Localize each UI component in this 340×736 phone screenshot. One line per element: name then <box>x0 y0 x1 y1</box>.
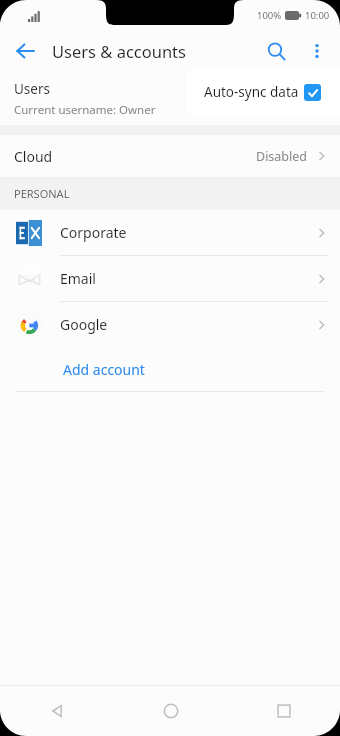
button[interactable]: Home <box>114 685 227 736</box>
button[interactable]: Cloud <box>0 135 340 177</box>
staticText: Current username: Owner <box>14 102 156 118</box>
staticText: Corporate <box>60 223 127 242</box>
button[interactable]: Back <box>0 685 114 736</box>
staticText: Disabled <box>256 148 308 165</box>
button[interactable]: Google <box>0 302 340 347</box>
button[interactable]: Corporate <box>0 210 340 255</box>
staticText: Email <box>60 269 96 288</box>
staticText: Auto-sync data <box>204 83 299 101</box>
button[interactable]: Add account <box>0 347 340 391</box>
button[interactable]: Recent apps <box>227 685 340 736</box>
button[interactable]: Auto-sync data <box>186 70 340 114</box>
staticText: PERSONAL <box>14 186 70 201</box>
button[interactable]: Search <box>258 33 294 69</box>
staticText: Cloud <box>14 147 53 166</box>
button[interactable]: More options <box>300 34 334 68</box>
button[interactable]: Back <box>8 34 42 68</box>
staticText: Add account <box>63 360 145 379</box>
staticText: Users & accounts <box>52 40 186 62</box>
staticText: Google <box>60 315 108 334</box>
button[interactable]: Email <box>0 256 340 301</box>
staticText: 10:00 <box>305 9 330 22</box>
staticText: 100% <box>257 9 282 22</box>
button[interactable]: Users <box>0 72 340 125</box>
staticText: Users <box>14 80 50 98</box>
